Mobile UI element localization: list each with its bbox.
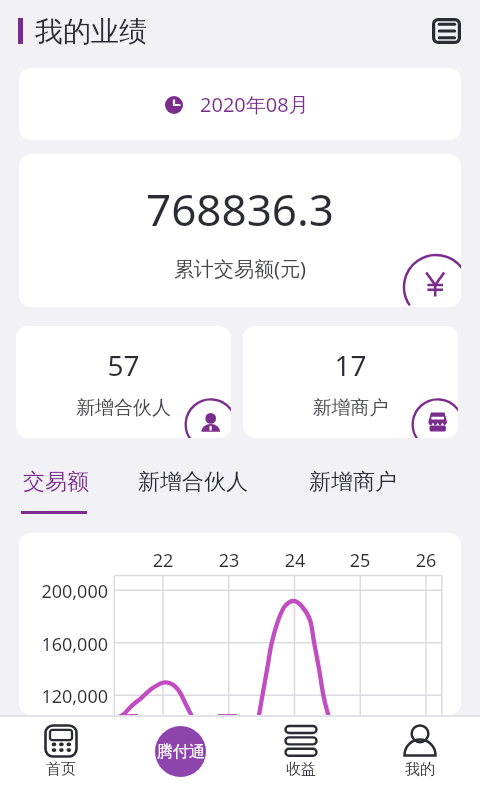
staticText: 新增合伙人 [138,468,248,496]
staticText: 26 [406,548,446,573]
button[interactable]: 我的 [386,719,454,781]
button[interactable]: Menu [432,18,461,44]
staticText: 我的 [386,760,454,779]
staticText: 17 [243,346,458,384]
staticText: 22 [143,548,183,573]
staticText: 24 [275,548,315,573]
staticText: 25 [340,548,380,573]
staticText: 23 [209,548,249,573]
staticText: 累计交易额(元) [19,255,461,282]
staticText: 768836.3 [19,179,461,239]
staticText: 收益 [267,760,335,779]
staticText: 200,000 [27,579,108,604]
button[interactable]: 腾付通 [155,726,206,777]
staticText: 160,000 [27,632,108,657]
button[interactable]: 新增商户 [309,468,397,496]
staticText: 新增商户 [243,396,458,420]
button[interactable]: 2020年08月 [19,68,461,140]
staticText: 交易额 [23,468,89,496]
staticText: 我的业绩 [35,14,147,49]
staticText: 新增商户 [309,468,397,496]
button[interactable]: 首页 [27,719,95,781]
staticText: 腾付通 [157,742,205,762]
staticText: 首页 [27,760,95,779]
button[interactable]: 收益 [267,719,335,781]
button[interactable]: 17 [243,326,458,438]
staticText: 120,000 [27,684,108,709]
staticText: 新增合伙人 [16,396,231,420]
button[interactable]: 交易额 [23,468,89,514]
staticText: 2020年08月 [200,91,309,118]
staticText: 57 [16,346,231,384]
button[interactable]: 新增合伙人 [138,468,248,496]
button[interactable]: 57 [16,326,231,438]
button[interactable]: 768836.3 [19,154,461,307]
